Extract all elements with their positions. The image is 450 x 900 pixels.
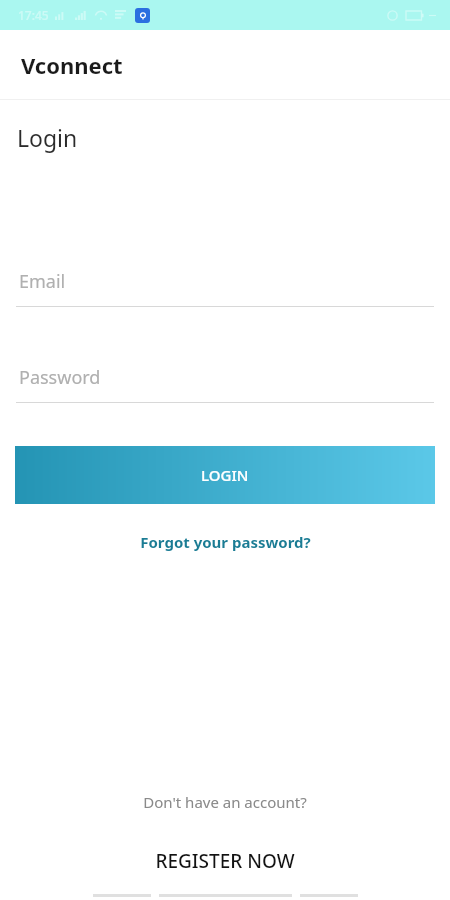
staticText: Password: [19, 365, 101, 390]
staticText: Login: [17, 122, 78, 153]
staticText: Email: [19, 269, 66, 294]
button[interactable]: Email: [16, 269, 434, 307]
staticText: Vconnect: [21, 50, 123, 80]
button[interactable]: LOGIN: [15, 446, 435, 504]
staticText: 17:45: [18, 7, 49, 23]
staticText: Don't have an account?: [143, 792, 307, 812]
button[interactable]: Password: [16, 365, 434, 403]
button[interactable]: REGISTER NOW: [141, 844, 309, 878]
staticText: LOGIN: [201, 465, 249, 485]
button[interactable]: Forgot your password?: [128, 528, 323, 556]
